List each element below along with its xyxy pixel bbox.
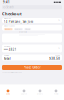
staticText: Free cancellation up to 1 hour: [2, 72, 22, 73]
staticText: Delivery to: [4, 18, 11, 19]
button[interactable]: Express: [14, 28, 23, 30]
staticText: $38.50: [49, 57, 60, 60]
staticText: >: [58, 47, 60, 50]
staticText: Delivery speed: [4, 25, 15, 27]
staticText: Search: [6, 5, 14, 9]
button[interactable]: Search: [2, 5, 62, 9]
button[interactable]: Delivery to: [2, 18, 62, 23]
button[interactable]: Place Order: [2, 65, 62, 70]
staticText: Total: [4, 57, 11, 60]
staticText: Order note: [19, 31, 27, 33]
button[interactable]: Profile: [48, 84, 64, 100]
staticText: 9:41: [3, 0, 10, 4]
button[interactable]: Search: [16, 84, 32, 100]
staticText: Place Order: [23, 66, 40, 69]
button[interactable]: Pickup: [24, 28, 31, 30]
staticText: Payment: [4, 46, 10, 47]
staticText: >: [58, 19, 60, 22]
button[interactable]: Payment: [2, 44, 62, 52]
button[interactable]: Home: [0, 84, 16, 100]
staticText: $34.00: [55, 55, 60, 56]
staticText: Express: [15, 28, 22, 30]
staticText: Pickup: [25, 28, 30, 30]
staticText: •••• 4821: [4, 48, 17, 51]
staticText: Home: [6, 93, 10, 95]
button[interactable]: Standard: [4, 28, 13, 30]
staticText: Subtotal: [4, 55, 9, 56]
staticText: Profile: [53, 93, 58, 95]
staticText: 14 Park Lane, San Jose: [4, 20, 34, 23]
staticText: Checkout: [2, 11, 22, 16]
button[interactable]: Orders: [32, 84, 48, 100]
staticText: Standard: [5, 28, 12, 30]
